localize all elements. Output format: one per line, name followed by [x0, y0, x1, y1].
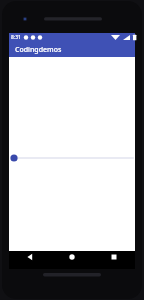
- button[interactable]: Recent apps: [93, 251, 135, 269]
- button[interactable]: Back: [9, 251, 51, 269]
- staticText: 8:31: [11, 34, 21, 41]
- button[interactable]: Home: [51, 251, 93, 269]
- button[interactable]: Slider: [9, 153, 135, 163]
- staticText: Codingdemos: [15, 45, 62, 55]
- button[interactable]: Codingdemos: [9, 42, 135, 57]
